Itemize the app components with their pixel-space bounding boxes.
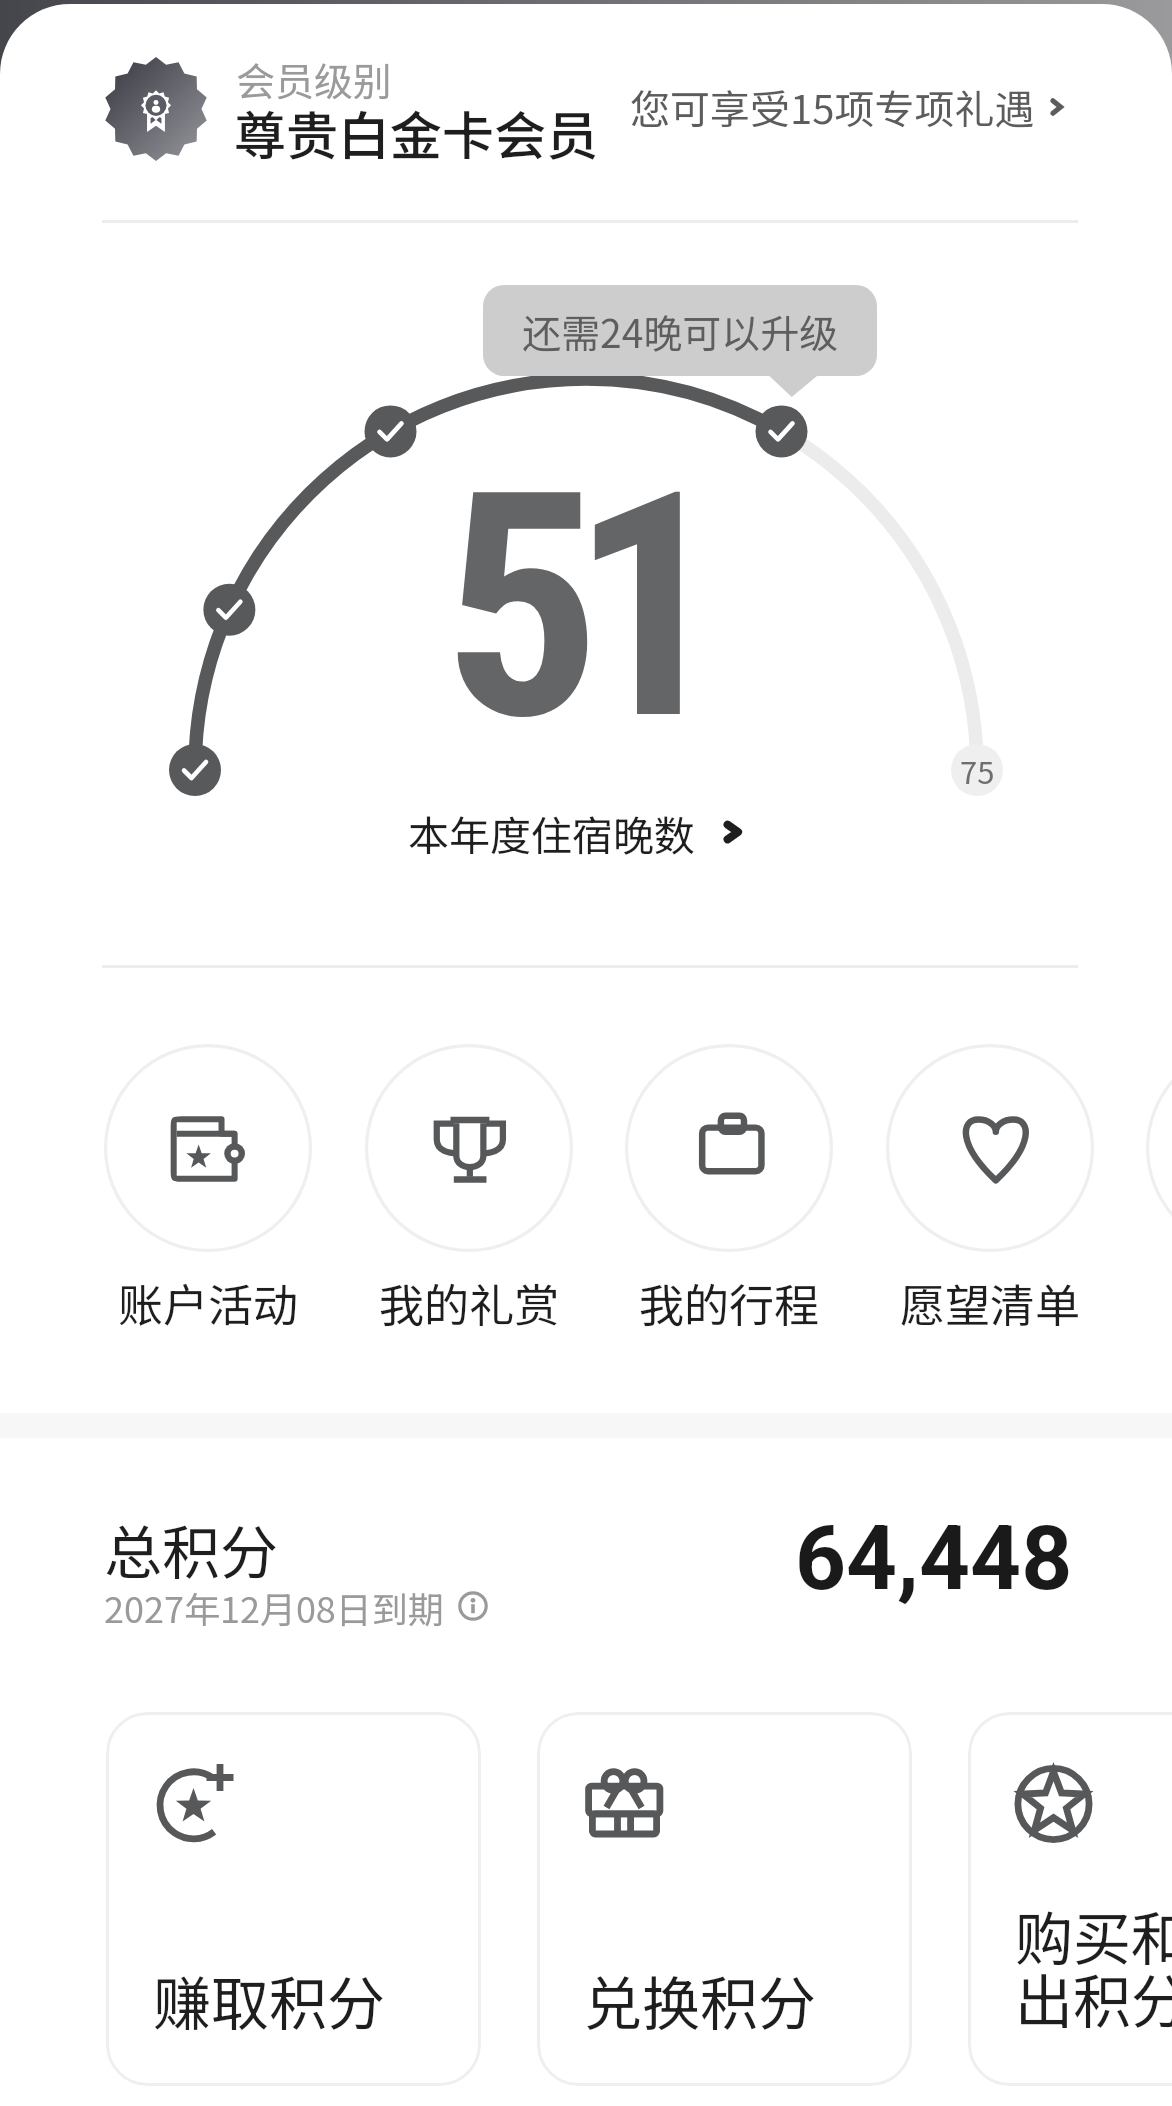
- staticText: 64,448: [795, 1506, 1073, 1610]
- button[interactable]: 您可享受15项专项礼遇: [630, 77, 1070, 137]
- staticText: 还需24晚可以升级: [522, 303, 839, 359]
- button[interactable]: 会员级别: [96, 40, 616, 180]
- staticText: 我的行程: [639, 1270, 820, 1335]
- staticText: 我的礼赏: [379, 1270, 560, 1335]
- button[interactable]: 赚取积分: [106, 1712, 481, 2086]
- staticText: 51: [443, 425, 699, 765]
- button[interactable]: 2027年12月08日到期: [104, 1581, 488, 1631]
- button[interactable]: 账户活动: [104, 1044, 312, 1335]
- staticText: 本年度住宿晚数: [408, 803, 695, 862]
- staticText: 尊贵白金卡会员: [234, 95, 599, 170]
- button[interactable]: 本年度住宿晚数: [408, 797, 749, 867]
- other: 兑换积分: [581, 1762, 681, 1862]
- staticText: 愿望清单: [900, 1270, 1081, 1335]
- staticText: 75: [960, 748, 995, 793]
- button[interactable]: 购买和转出积分: [968, 1712, 1172, 2086]
- button[interactable]: 客: [1146, 1044, 1172, 1335]
- button[interactable]: 我的行程: [625, 1044, 833, 1335]
- staticText: 您可享受15项专项礼遇: [630, 78, 1035, 136]
- staticText: 会员级别: [236, 51, 393, 107]
- other: 赚取积分: [150, 1762, 250, 1862]
- staticText: 购买和转 出积分: [1015, 1893, 1172, 2033]
- other: 购买和转出积分: [1012, 1762, 1112, 1862]
- staticText: 2027年12月08日到期: [104, 1581, 444, 1631]
- button[interactable]: 兑换积分: [537, 1712, 912, 2086]
- button[interactable]: 愿望清单: [886, 1044, 1094, 1335]
- staticText: 总积分: [104, 1507, 279, 1591]
- staticText: 账户活动: [118, 1270, 299, 1335]
- staticText: 赚取积分: [153, 1958, 386, 2042]
- other: 信息: [458, 1591, 488, 1621]
- staticText: 兑换积分: [584, 1958, 817, 2042]
- button[interactable]: 我的礼赏: [365, 1044, 573, 1335]
